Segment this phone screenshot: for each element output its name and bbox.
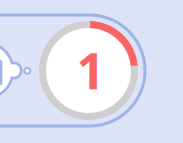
staticText: 1 <box>76 37 104 103</box>
